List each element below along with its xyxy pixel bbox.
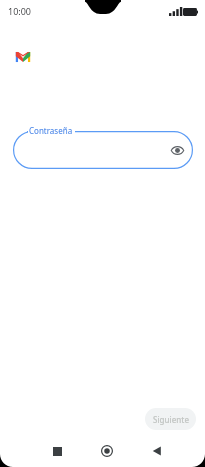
button[interactable]: Recientes [44, 438, 70, 464]
button[interactable]: Inicio [94, 438, 120, 464]
button[interactable]: Siguiente [145, 408, 196, 430]
staticText: Contraseña [29, 125, 73, 136]
button[interactable]: Mostrar contraseña [168, 141, 186, 159]
button[interactable]: Contraseña [13, 131, 193, 169]
staticText: Siguiente [153, 414, 189, 425]
button[interactable]: Atrás [144, 438, 170, 464]
staticText: 10:00 [8, 5, 32, 17]
